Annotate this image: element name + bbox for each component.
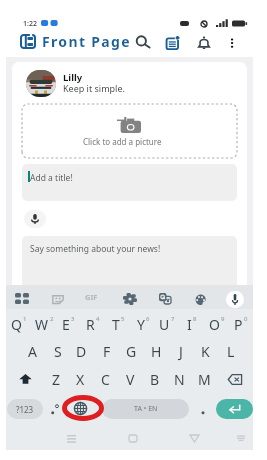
staticText: 1:22 [23, 19, 37, 29]
button[interactable]: J [168, 337, 193, 365]
button[interactable]: New post [162, 32, 184, 54]
staticText: N [174, 370, 185, 389]
staticText: W [35, 315, 49, 334]
staticText: 2 [50, 315, 54, 323]
button[interactable]: ?123 [7, 399, 43, 419]
staticText: X [76, 370, 85, 389]
button[interactable]: T [105, 310, 130, 338]
staticText: V [126, 370, 135, 389]
button[interactable]: N [167, 365, 192, 393]
button[interactable]: Notifications [193, 32, 215, 54]
staticText: Z [52, 370, 61, 389]
staticText: I [187, 315, 192, 334]
button[interactable]: E [55, 310, 80, 338]
button[interactable]: D [69, 337, 94, 365]
button[interactable]: U [154, 310, 179, 338]
button[interactable]: Y [130, 310, 155, 338]
button[interactable]: Home [123, 428, 143, 448]
button[interactable]: Q [6, 310, 31, 338]
button[interactable]: M [192, 365, 217, 393]
staticText: 3 [71, 315, 75, 323]
button[interactable]: Search [132, 32, 154, 54]
staticText: ?123 [16, 404, 34, 415]
button[interactable]: Translate [157, 291, 173, 306]
staticText: G [126, 342, 137, 361]
button[interactable]: Profile photo [26, 70, 56, 97]
button[interactable]: TA • EN [102, 399, 189, 419]
button[interactable]: Keyboard [231, 428, 251, 448]
button[interactable]: A [20, 337, 45, 365]
button[interactable]: O [204, 310, 229, 338]
button[interactable]: GIF [80, 290, 103, 304]
button[interactable]: L [218, 337, 243, 365]
staticText: 7 [171, 315, 175, 323]
button[interactable]: Shift [6, 365, 44, 393]
button[interactable]: V [118, 365, 143, 393]
staticText: Y [137, 315, 145, 334]
button[interactable]: Front Page [18, 32, 38, 51]
button[interactable] [46, 399, 62, 419]
button[interactable]: Change language [70, 398, 90, 418]
staticText: R [86, 315, 95, 334]
button[interactable]: Click to add a picture [22, 104, 237, 158]
staticText: T [112, 315, 120, 334]
staticText: 1 [23, 315, 27, 323]
button[interactable]: C [93, 365, 118, 393]
button[interactable]: Stickers [50, 292, 66, 306]
staticText: M [198, 370, 211, 389]
staticText: 4 [96, 315, 100, 323]
button[interactable]: W [31, 310, 56, 338]
button[interactable]: Backspace [217, 365, 253, 393]
staticText: B [150, 370, 160, 389]
staticText: D [76, 342, 87, 361]
button[interactable]: Enter [216, 399, 253, 419]
staticText: E [62, 315, 70, 334]
staticText: Lilly [63, 71, 83, 84]
staticText: GIF [85, 292, 98, 302]
staticText: H [151, 342, 162, 361]
staticText: J [179, 342, 183, 361]
staticText: Add a title! [30, 172, 73, 184]
staticText: F [103, 342, 111, 361]
staticText: 8 [193, 315, 197, 323]
staticText: O [209, 315, 220, 334]
button[interactable]: Add a title! [22, 164, 237, 201]
staticText: Front Page [42, 32, 132, 51]
button[interactable]: More options [221, 32, 243, 54]
button[interactable]: Voice typing [226, 291, 244, 308]
button[interactable]: P [228, 310, 253, 338]
button[interactable]: Settings [121, 291, 139, 307]
button[interactable]: G [119, 337, 144, 365]
button[interactable]: S [45, 337, 70, 365]
button[interactable]: Say something about your news! [22, 236, 237, 288]
staticText: P [234, 315, 243, 334]
staticText: Q [11, 315, 22, 334]
staticText: K [201, 342, 210, 361]
staticText: C [101, 370, 110, 389]
button[interactable]: K [193, 337, 218, 365]
button[interactable]: Z [44, 365, 69, 393]
staticText: Keep it simple. [63, 82, 125, 94]
button[interactable] [195, 399, 211, 419]
staticText: 5 [121, 315, 125, 323]
staticText: A [28, 342, 37, 361]
button[interactable]: Themes [193, 292, 208, 307]
button[interactable]: R [80, 310, 105, 338]
staticText: Say something about your news! [30, 243, 161, 255]
staticText: U [159, 315, 170, 334]
button[interactable]: X [68, 365, 93, 393]
button[interactable]: B [142, 365, 167, 393]
button[interactable]: Apps [13, 291, 31, 306]
button[interactable]: I [179, 310, 204, 338]
staticText: 9 [221, 315, 225, 323]
staticText: TA • EN [134, 404, 158, 414]
staticText: Click to add a picture [83, 136, 162, 147]
button[interactable]: Back [184, 428, 204, 448]
button[interactable]: Recent apps [61, 428, 81, 448]
staticText: S [54, 342, 62, 361]
staticText: 6 [146, 315, 150, 323]
button[interactable]: F [94, 337, 119, 365]
button[interactable]: H [144, 337, 169, 365]
staticText: L [227, 342, 235, 361]
button[interactable]: Voice input [24, 210, 46, 228]
